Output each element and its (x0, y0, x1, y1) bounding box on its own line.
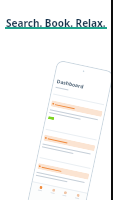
button[interactable] (38, 185, 43, 191)
button[interactable] (50, 188, 55, 194)
button[interactable] (62, 191, 67, 196)
staticText: Dashboard (56, 78, 84, 91)
button[interactable] (36, 163, 89, 186)
button[interactable] (42, 135, 95, 158)
button[interactable] (48, 100, 103, 130)
button[interactable] (75, 193, 80, 199)
staticText: Search. Book. Relax. (6, 16, 106, 30)
